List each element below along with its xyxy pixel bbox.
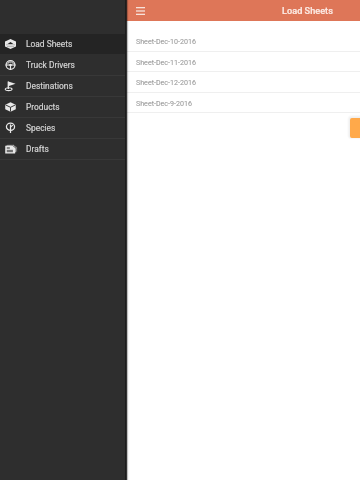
staticText: Sheet-Dec-9-2016 <box>136 99 192 107</box>
button[interactable]: Products <box>0 97 126 118</box>
button[interactable]: Sheet-Dec-11-2016 <box>126 52 360 72</box>
staticText: Truck Drivers <box>26 60 75 70</box>
staticText: Load Sheets <box>26 39 73 49</box>
staticText: Sheet-Dec-12-2016 <box>136 78 196 86</box>
button[interactable]: Species <box>0 118 126 139</box>
button[interactable]: Open navigation drawer <box>126 0 147 21</box>
button[interactable]: Drafts <box>0 139 126 160</box>
button[interactable]: Load Sheets <box>0 34 126 55</box>
button[interactable]: Sheet-Dec-9-2016 <box>126 93 360 113</box>
button[interactable]: Destinations <box>0 76 126 97</box>
staticText: Species <box>26 123 56 133</box>
button[interactable]: Sheet-Dec-10-2016 <box>126 31 360 51</box>
button[interactable]: Add load sheet <box>350 118 360 138</box>
staticText: Sheet-Dec-10-2016 <box>136 37 196 45</box>
staticText: Products <box>26 102 60 112</box>
staticText: Sheet-Dec-11-2016 <box>136 58 196 66</box>
button[interactable]: Truck Drivers <box>0 55 126 76</box>
staticText: Load Sheets <box>282 5 333 16</box>
staticText: Destinations <box>26 81 73 91</box>
button[interactable]: Sheet-Dec-12-2016 <box>126 72 360 92</box>
staticText: Drafts <box>26 144 49 154</box>
